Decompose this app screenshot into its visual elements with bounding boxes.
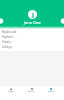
- button[interactable]: Home: [0, 86, 21, 100]
- staticText: J: [32, 11, 34, 19]
- staticText: Profile: [48, 90, 54, 93]
- button[interactable]: Profile: [41, 86, 61, 100]
- button[interactable]: My Account: [0, 29, 64, 34]
- staticText: My Account: [2, 30, 17, 34]
- staticText: Settings: [2, 45, 12, 49]
- button[interactable]: Payment: [0, 34, 64, 39]
- button[interactable]: Orders: [21, 86, 41, 100]
- button[interactable]: History: [0, 39, 64, 44]
- staticText: Payment: [2, 35, 13, 39]
- staticText: Home: [8, 90, 14, 93]
- button[interactable]: Settings: [0, 44, 64, 49]
- staticText: Orders: [28, 90, 35, 93]
- staticText: History: [2, 40, 11, 44]
- button[interactable]: Profile photo: [28, 10, 37, 19]
- staticText: Jane Doe: [24, 20, 41, 25]
